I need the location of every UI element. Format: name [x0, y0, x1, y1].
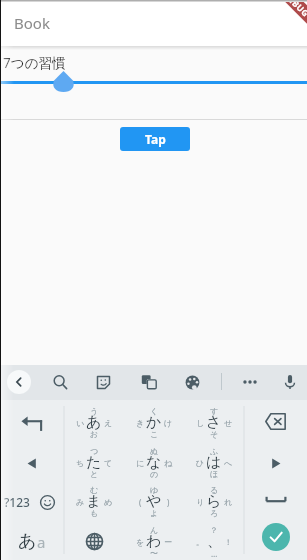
button[interactable]: あ [64, 402, 124, 442]
staticText: も [90, 508, 99, 518]
button[interactable]: Space [244, 480, 307, 520]
staticText: る [210, 485, 219, 495]
button[interactable]: ら [184, 481, 244, 521]
staticText: ち [76, 458, 85, 468]
staticText: つ [90, 446, 99, 456]
staticText: ら [206, 492, 222, 511]
button[interactable]: ま [64, 481, 124, 521]
button[interactable]: た [64, 442, 124, 482]
button[interactable]: さ [184, 402, 244, 442]
staticText: む [90, 485, 99, 495]
staticText: お [90, 429, 99, 439]
button[interactable]: Themes [177, 367, 207, 397]
staticText: め [104, 497, 113, 507]
staticText: Tap [145, 131, 166, 147]
staticText: よ [150, 508, 159, 518]
staticText: ま [86, 492, 102, 511]
staticText: ね [164, 458, 173, 468]
staticText: え [104, 418, 113, 428]
staticText: ほ [210, 469, 219, 479]
button[interactable]: Back [7, 370, 31, 394]
staticText: ！ [224, 537, 232, 547]
staticText: な [146, 453, 162, 472]
staticText: こ [150, 429, 159, 439]
staticText: あ [86, 413, 102, 432]
staticText: Book [14, 13, 50, 33]
staticText: ?123 [4, 494, 30, 510]
staticText: れ [224, 497, 233, 507]
staticText: て [104, 458, 113, 468]
button[interactable]: Switch language [64, 521, 124, 560]
staticText: ふ [210, 446, 219, 456]
staticText: ろ [210, 508, 219, 518]
staticText: 。 [196, 537, 204, 547]
staticText: a [37, 532, 46, 552]
staticText: ) [167, 497, 170, 508]
button[interactable]: は [184, 442, 244, 482]
staticText: へ [224, 458, 233, 468]
button[interactable]: Backspace [244, 401, 307, 441]
staticText: に [136, 458, 145, 468]
button[interactable]: Stickers [88, 367, 118, 397]
button[interactable]: Move cursor left [0, 443, 64, 483]
button[interactable]: Symbols [0, 482, 64, 522]
button[interactable]: Enter [244, 517, 307, 557]
staticText: や [146, 492, 162, 511]
staticText: ？ [210, 525, 218, 535]
staticText: あ [18, 530, 37, 553]
staticText: き [136, 418, 145, 428]
staticText: DEBUG [281, 0, 307, 20]
staticText: さ [206, 413, 222, 432]
staticText: と [90, 469, 99, 479]
staticText: み [76, 497, 85, 507]
staticText: 、 [207, 532, 222, 551]
button[interactable]: Tap [120, 127, 190, 151]
button[interactable]: か [124, 402, 184, 442]
staticText: い [76, 418, 85, 428]
staticText: か [146, 413, 162, 432]
button[interactable]: Move cursor right [244, 443, 307, 483]
button[interactable]: 、 [184, 521, 244, 560]
staticText: … [211, 548, 218, 559]
staticText: し [196, 418, 205, 428]
staticText: そ [210, 429, 219, 439]
staticText: り [196, 497, 205, 507]
staticText: す [210, 406, 219, 416]
staticText: ぬ [150, 446, 159, 456]
staticText: わ [146, 532, 162, 551]
staticText: ー [164, 537, 172, 547]
staticText: 〜 [150, 548, 158, 558]
staticText: く [150, 406, 159, 416]
staticText: せ [224, 418, 233, 428]
staticText: け [164, 418, 173, 428]
staticText: ゆ [150, 485, 159, 495]
staticText: は [206, 453, 222, 472]
button[interactable]: Search [45, 367, 75, 397]
staticText: ひ [196, 458, 205, 468]
staticText: ん [150, 525, 159, 535]
button[interactable]: な [124, 442, 184, 482]
staticText: た [86, 453, 102, 472]
button[interactable]: や [124, 481, 184, 521]
staticText: う [90, 406, 99, 416]
button[interactable]: Undo [0, 403, 64, 443]
button[interactable]: More options [235, 367, 265, 397]
button[interactable]: わ [124, 521, 184, 560]
button[interactable]: Voice input [275, 367, 305, 397]
button[interactable]: Language [0, 521, 64, 560]
staticText: ( [139, 497, 142, 508]
staticText: 7つの習慣 [3, 54, 66, 72]
staticText: の [150, 469, 159, 479]
button[interactable]: Translate [134, 367, 164, 397]
staticText: を [136, 537, 145, 547]
